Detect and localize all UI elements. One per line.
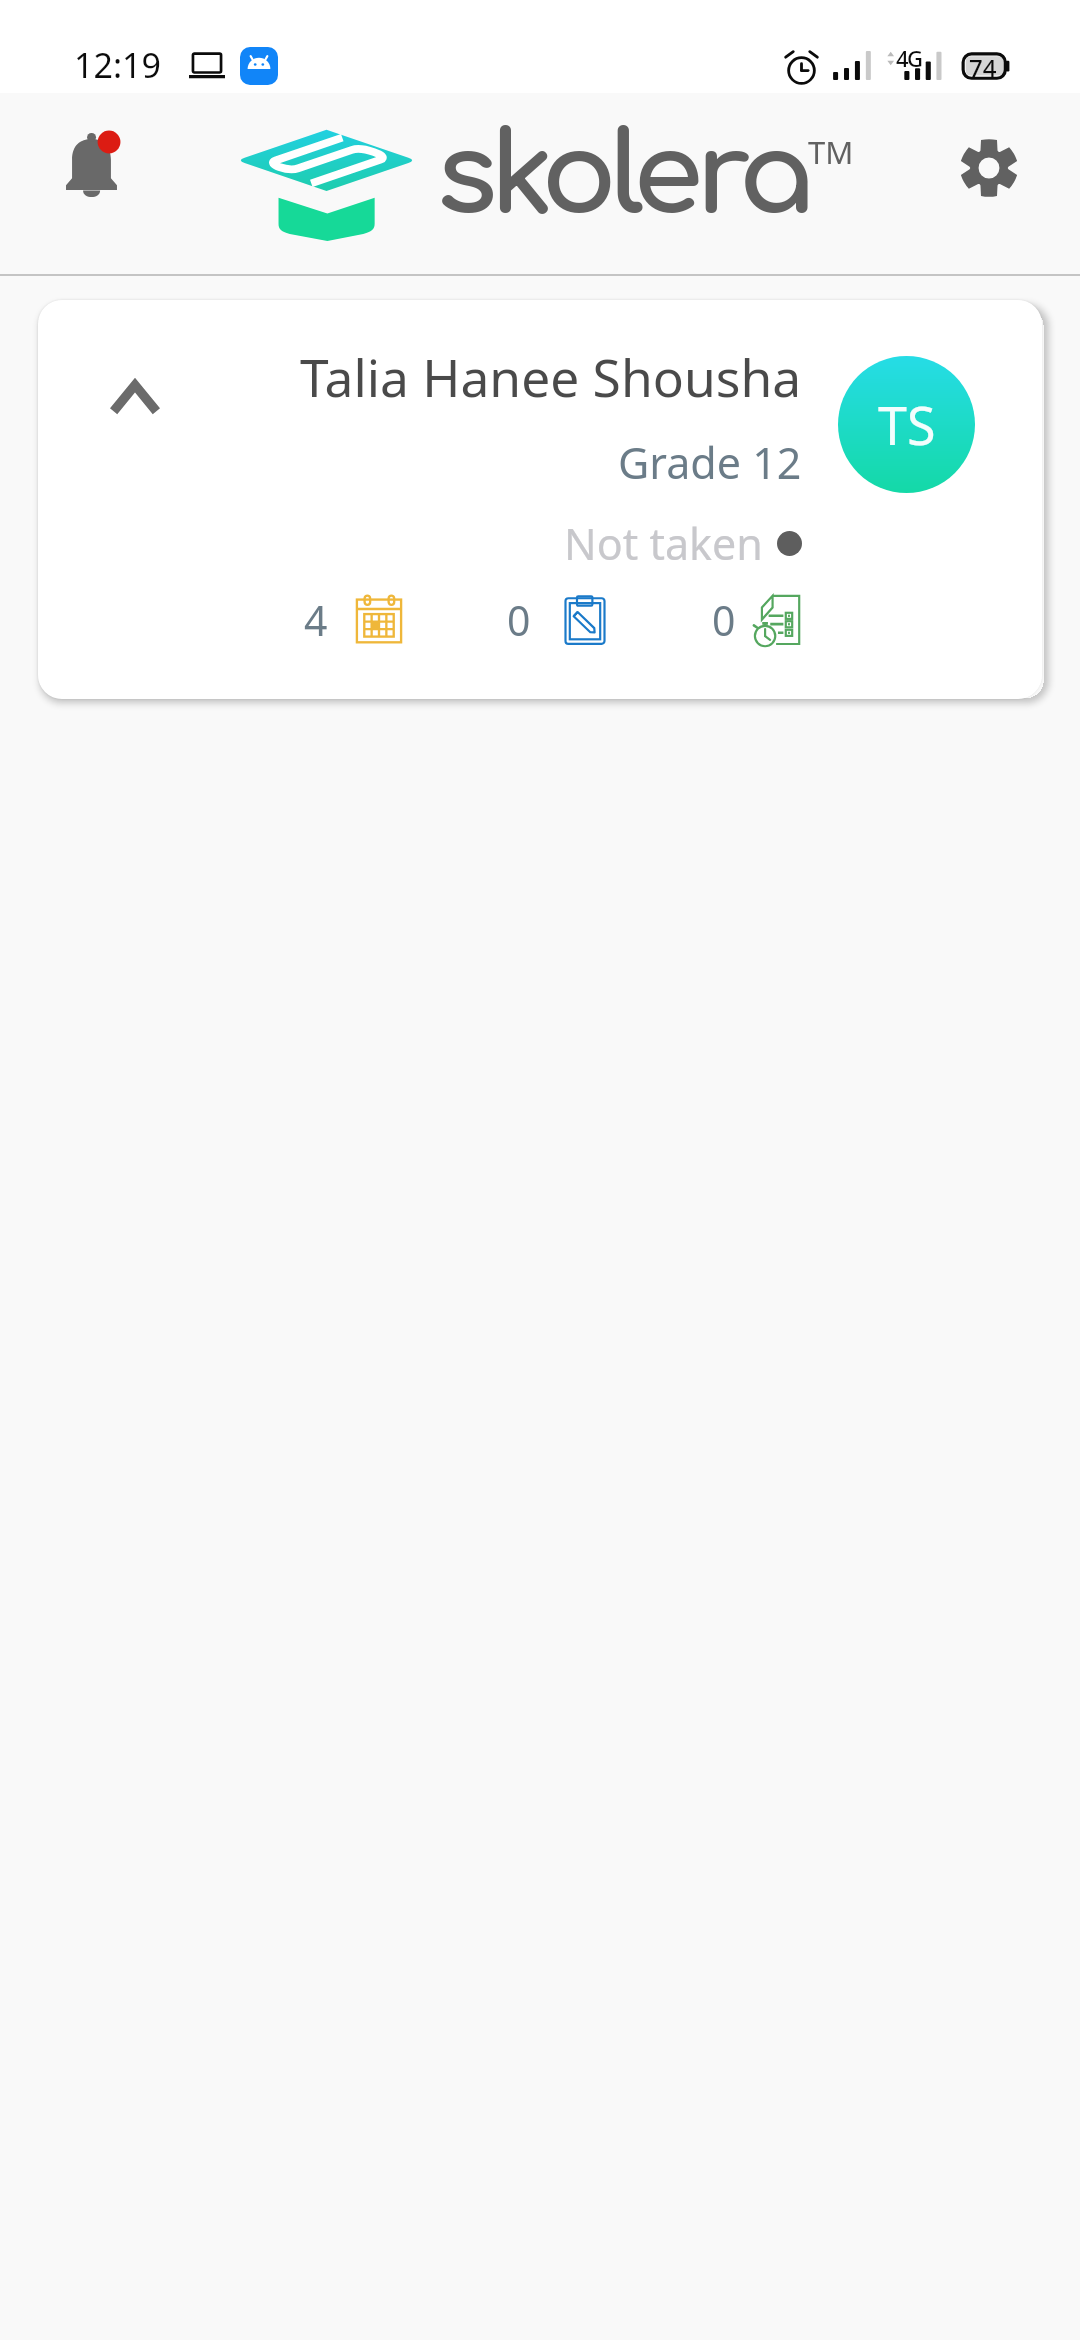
button[interactable]: 4 <box>295 588 405 652</box>
button[interactable]: 0 <box>703 588 803 652</box>
button[interactable]: 0 <box>498 588 611 652</box>
button[interactable]: Collapse <box>90 353 180 443</box>
staticText: skolera <box>436 113 808 239</box>
staticText: 12:19 <box>74 42 161 88</box>
staticText: 4 <box>304 592 328 648</box>
staticText: 74 <box>969 51 997 81</box>
staticText: TS <box>878 389 936 460</box>
staticText: TM <box>808 131 854 173</box>
staticText: 4G <box>896 43 922 73</box>
button[interactable]: Settings <box>939 118 1039 218</box>
staticText: Grade 12 <box>618 433 802 492</box>
staticText: 0 <box>507 592 531 648</box>
staticText: 0 <box>712 592 736 648</box>
button[interactable]: Notifications <box>36 109 146 219</box>
staticText: Talia Hanee Shousha <box>300 342 802 412</box>
button[interactable]: Collapse <box>38 300 1042 699</box>
staticText: Not taken <box>564 514 763 573</box>
